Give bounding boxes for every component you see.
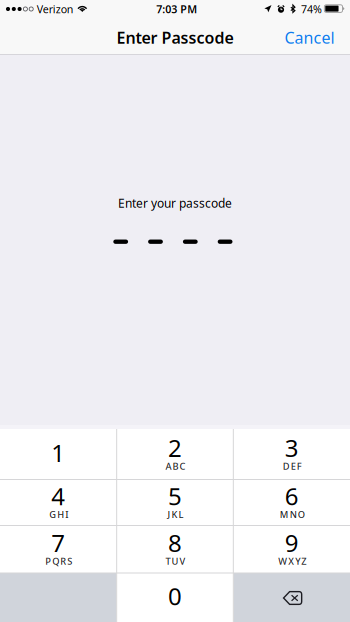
staticText: GHI (49, 508, 68, 520)
staticText: 7:03 PM (156, 2, 197, 16)
staticText: 8 (168, 527, 182, 559)
button[interactable]: 2 (117, 429, 233, 479)
button[interactable]: 0 (117, 573, 233, 622)
button[interactable]: 5 (117, 479, 233, 525)
button[interactable]: 9 (233, 525, 350, 573)
button[interactable]: 8 (117, 525, 233, 573)
button[interactable]: 7 (0, 525, 117, 573)
staticText: 0 (168, 580, 182, 612)
staticText: 6 (285, 480, 299, 512)
staticText: 3 (285, 432, 299, 464)
staticText: 7 (51, 527, 65, 559)
staticText: Verizon (37, 2, 74, 16)
staticText: Enter Passcode (116, 27, 233, 48)
staticText: ABC (165, 460, 185, 472)
staticText: JKL (167, 508, 183, 520)
staticText: DEF (283, 460, 302, 472)
button[interactable]: Cancel (280, 26, 350, 50)
staticText: 74% (301, 2, 322, 16)
staticText: PQRS (45, 555, 72, 567)
button[interactable]: 3 (233, 429, 350, 479)
staticText: Enter your passcode (118, 195, 232, 211)
staticText: MNO (280, 508, 305, 520)
button[interactable]: 4 (0, 479, 117, 525)
button[interactable]: Delete (233, 573, 350, 622)
staticText: WXYZ (278, 555, 306, 567)
staticText: 9 (285, 527, 299, 559)
staticText: 4 (51, 480, 65, 512)
staticText: TUV (165, 555, 185, 567)
button[interactable]: 6 (233, 479, 350, 525)
staticText: 2 (168, 432, 182, 464)
staticText: 5 (168, 480, 182, 512)
staticText: Cancel (284, 27, 334, 48)
button[interactable]: 1 (0, 429, 117, 479)
staticText: 1 (51, 437, 65, 469)
